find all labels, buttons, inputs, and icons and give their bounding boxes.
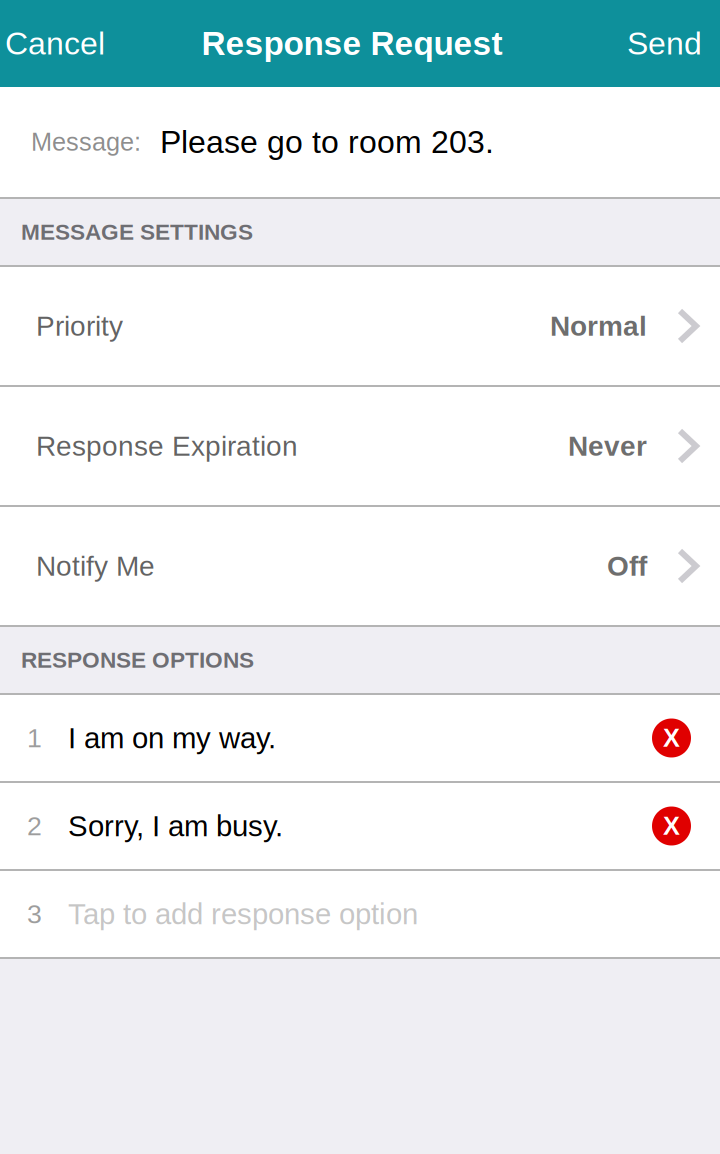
button[interactable]: Response Expiration [0, 387, 720, 505]
button[interactable]: Priority [0, 267, 720, 385]
staticText: RESPONSE OPTIONS [21, 647, 254, 673]
staticText: X [663, 724, 680, 752]
staticText: Send [627, 26, 702, 61]
button[interactable]: Notify Me [0, 507, 720, 625]
button[interactable]: Send [613, 0, 720, 87]
staticText: Tap to add response option [68, 898, 418, 930]
staticText: Response Request [201, 25, 502, 62]
button[interactable]: 2 [0, 783, 720, 869]
staticText: Priority [36, 310, 123, 342]
staticText: Notify Me [36, 550, 155, 582]
staticText: 3 [27, 899, 42, 929]
button[interactable]: 1 [0, 695, 720, 781]
staticText: 1 [27, 723, 42, 753]
staticText: I am on my way. [68, 722, 276, 754]
staticText: Normal [550, 310, 647, 342]
staticText: MESSAGE SETTINGS [21, 219, 253, 245]
button[interactable]: Cancel [0, 0, 119, 87]
staticText: Cancel [5, 26, 105, 61]
staticText: Sorry, I am busy. [68, 810, 283, 842]
staticText: Off [607, 550, 647, 582]
staticText: Response Expiration [36, 430, 298, 462]
staticText: X [663, 812, 680, 840]
staticText: 2 [27, 811, 42, 841]
staticText: Please go to room 203. [160, 124, 494, 160]
staticText: Message: [31, 128, 141, 156]
staticText: Never [568, 430, 647, 462]
button[interactable]: 3 [0, 871, 720, 957]
